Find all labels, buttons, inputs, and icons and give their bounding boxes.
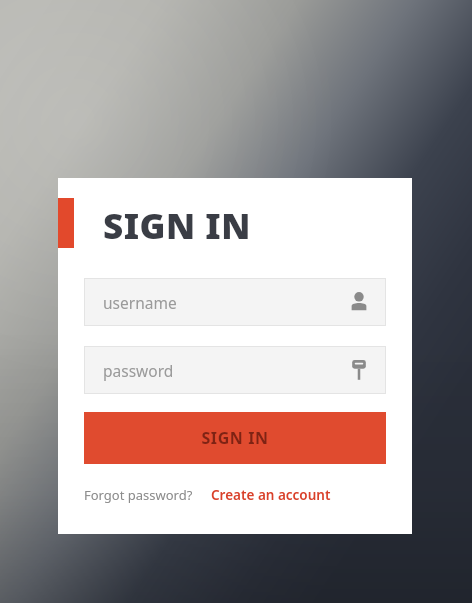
- staticText: SIGN IN: [103, 202, 251, 250]
- button[interactable]: Password: [84, 346, 386, 394]
- staticText: password: [103, 360, 174, 381]
- button[interactable]: Forgot password?: [84, 486, 193, 504]
- staticText: SIGN IN: [201, 427, 269, 449]
- button[interactable]: Create an account: [211, 486, 331, 504]
- staticText: username: [103, 292, 177, 313]
- button[interactable]: Username: [84, 278, 386, 326]
- button[interactable]: SIGN IN: [84, 412, 386, 464]
- staticText: Forgot password?: [84, 486, 193, 504]
- staticText: Create an account: [211, 486, 331, 504]
